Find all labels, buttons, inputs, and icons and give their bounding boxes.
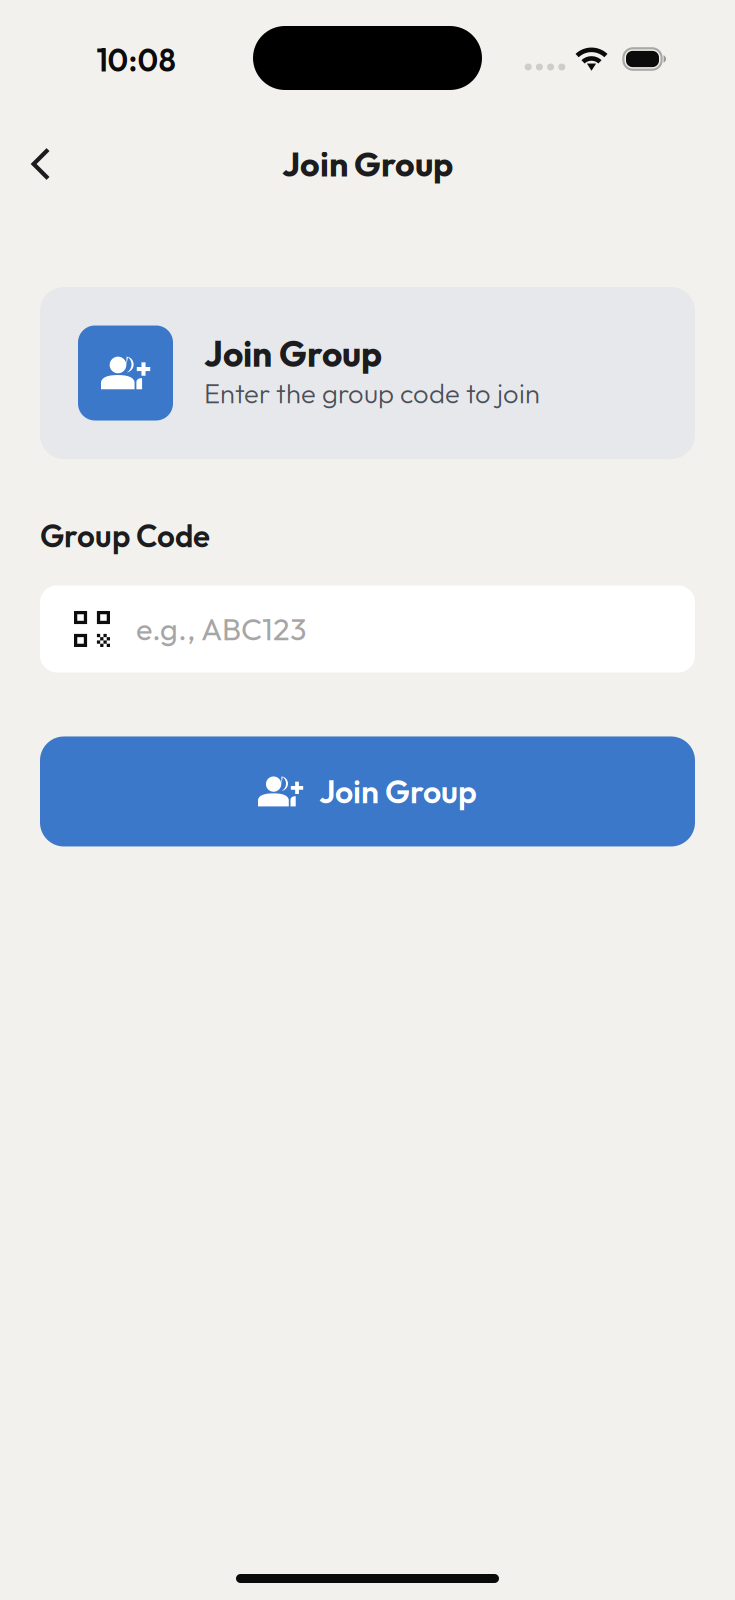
staticText: Join Group (204, 331, 382, 376)
button[interactable]: e.g., ABC123 (40, 585, 695, 672)
staticText: Join Group (282, 143, 453, 185)
staticText: Enter the group code to join (204, 376, 540, 410)
button[interactable]: Join Group (40, 736, 695, 846)
button[interactable]: Back (10, 133, 72, 195)
staticText: e.g., ABC123 (136, 610, 306, 648)
staticText: Join Group (319, 771, 477, 812)
staticText: 10:08 (96, 40, 175, 80)
staticText: Group Code (40, 516, 210, 555)
